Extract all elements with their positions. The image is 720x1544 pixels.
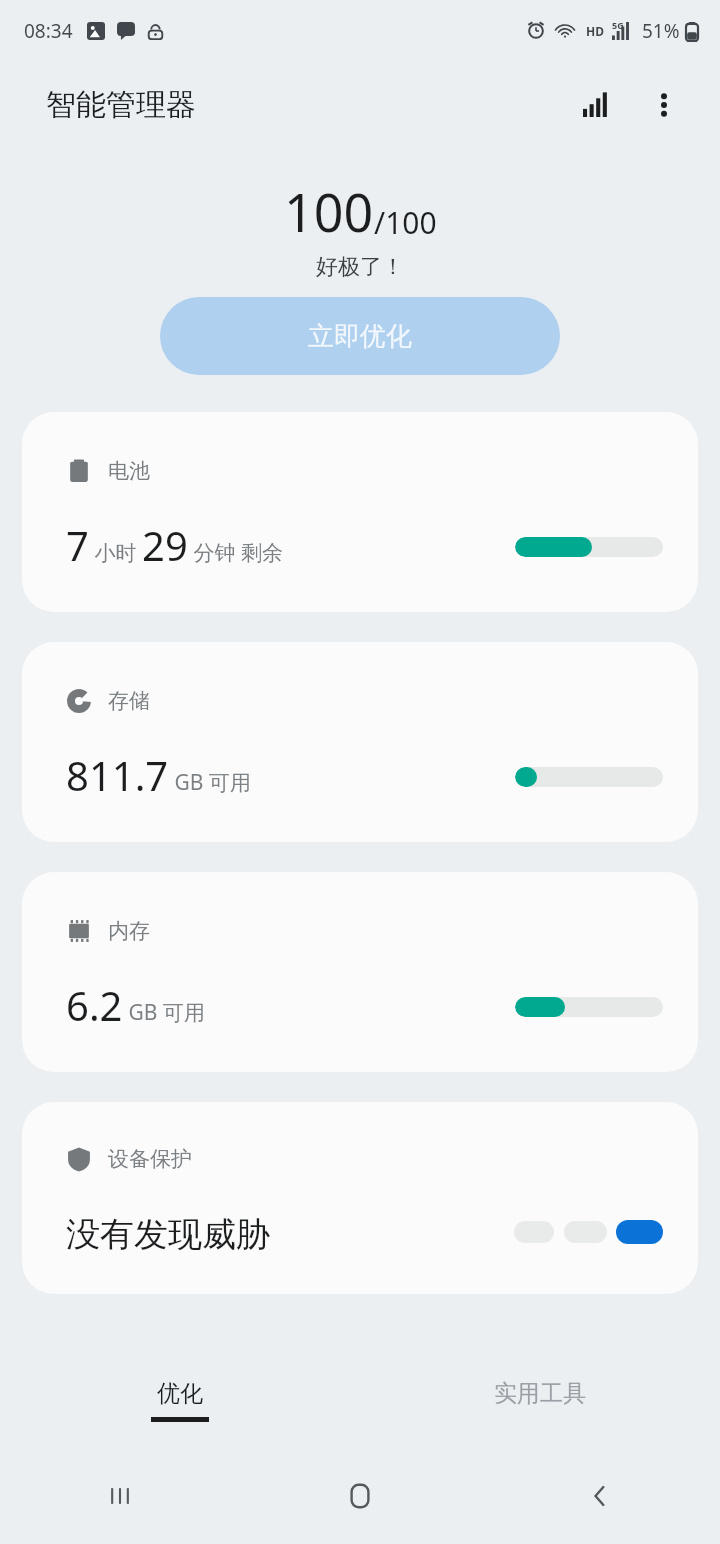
button[interactable]: 存储 (22, 642, 698, 842)
staticText: 5G (612, 19, 624, 31)
staticText: 分钟 剩余 (188, 538, 283, 567)
button[interactable]: Recents (0, 1448, 240, 1544)
staticText: 内存 (108, 918, 150, 944)
staticText: 优化 (157, 1379, 203, 1408)
staticText: GB 可用 (169, 768, 251, 797)
staticText: 电池 (108, 458, 150, 484)
staticText: 811.7 (66, 748, 169, 802)
button[interactable]: More options (638, 79, 690, 131)
button[interactable]: 设备保护 (22, 1102, 698, 1294)
button[interactable]: Back (480, 1448, 720, 1544)
staticText: 7 (66, 518, 89, 572)
staticText: 100 (284, 176, 374, 247)
staticText: HD (586, 23, 604, 39)
staticText: 没有发现威胁 (66, 1213, 270, 1256)
button[interactable]: 实用工具 (360, 1352, 720, 1448)
staticText: 立即优化 (308, 320, 412, 353)
staticText: 智能管理器 (46, 86, 196, 124)
staticText: 08:34 (24, 18, 73, 44)
staticText: 51% (642, 18, 680, 44)
button[interactable]: 电池 (22, 412, 698, 612)
button[interactable]: Home (240, 1448, 480, 1544)
staticText: /100 (374, 202, 437, 243)
staticText: 6.2 (66, 978, 123, 1032)
button[interactable]: 立即优化 (160, 297, 560, 375)
staticText: 实用工具 (494, 1379, 586, 1408)
staticText: 好极了！ (316, 253, 404, 281)
button[interactable]: Usage statistics (572, 79, 624, 131)
staticText: 存储 (108, 688, 150, 714)
staticText: 小时 (89, 538, 142, 567)
button[interactable]: 优化 (0, 1352, 360, 1448)
staticText: 29 (142, 518, 188, 572)
button[interactable]: 内存 (22, 872, 698, 1072)
staticText: 设备保护 (108, 1146, 192, 1172)
staticText: GB 可用 (123, 998, 205, 1027)
